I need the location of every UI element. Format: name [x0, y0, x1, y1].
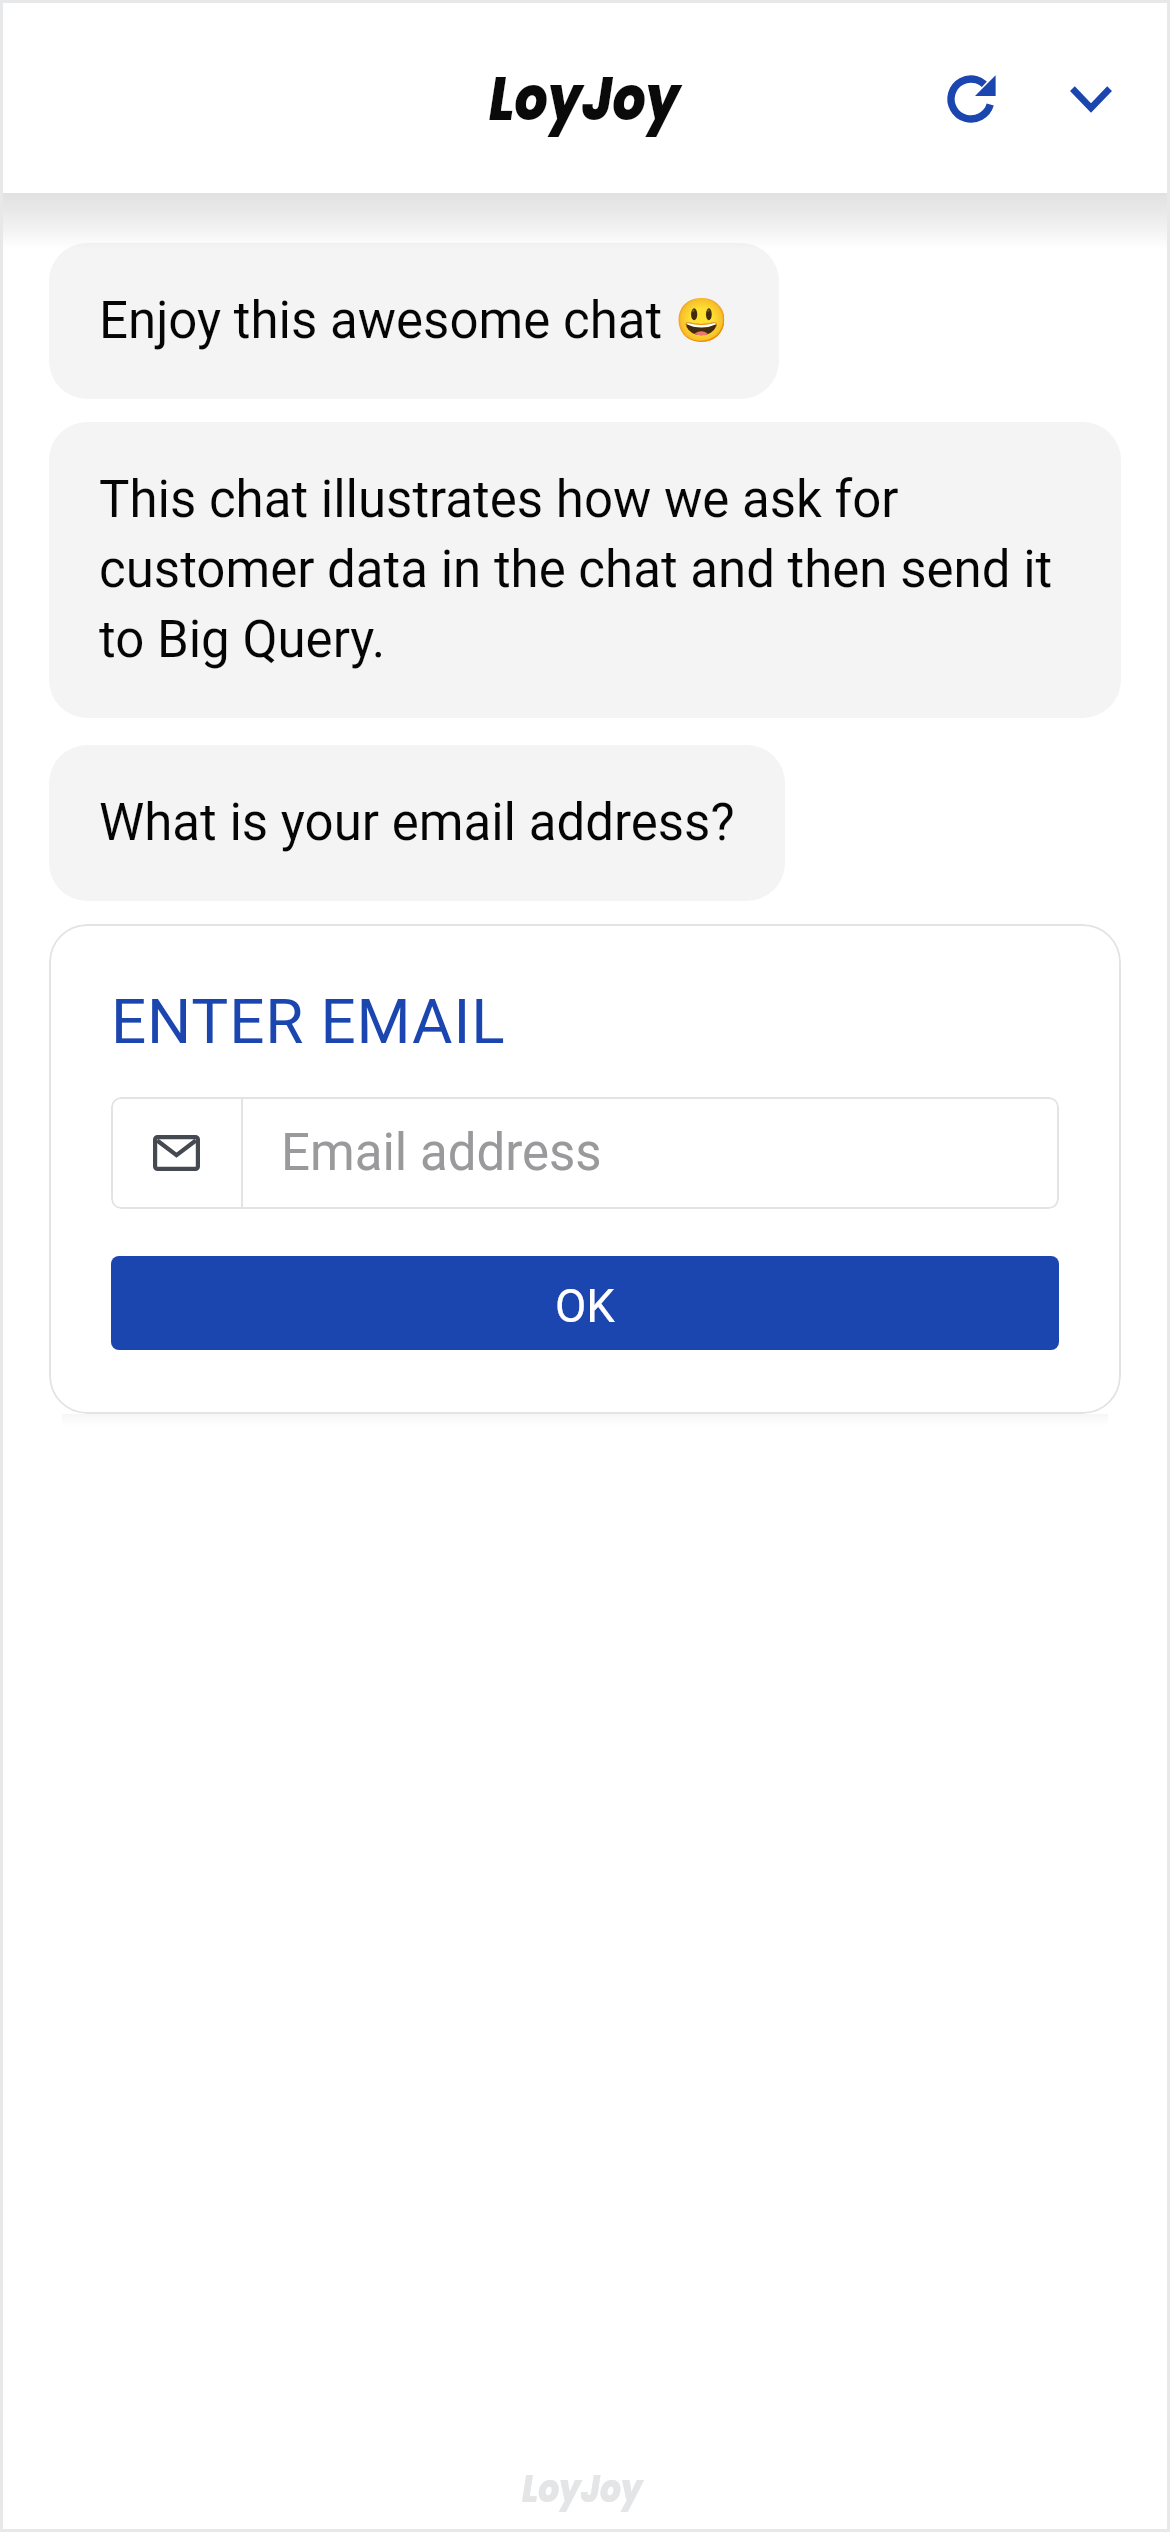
staticText: This chat illustrates how we ask for cus…: [99, 470, 1071, 670]
staticText: OK: [555, 1280, 615, 1333]
staticText: LoyJoy: [489, 56, 680, 141]
button[interactable]: Restart chat: [929, 51, 1025, 147]
button[interactable]: This chat illustrates how we ask for cus…: [49, 422, 1121, 718]
button[interactable]: Email address: [111, 1097, 1059, 1209]
staticText: What is your email address?: [99, 793, 735, 853]
button[interactable]: Minimise chat: [1043, 51, 1139, 147]
staticText: LoyJoy: [522, 2462, 643, 2516]
staticText: Enjoy this awesome chat 😃: [99, 291, 729, 351]
staticText: ENTER EMAIL: [111, 985, 506, 1058]
button[interactable]: OK: [111, 1256, 1059, 1350]
staticText: Email address: [281, 1123, 602, 1183]
button[interactable]: Enjoy this awesome chat 😃: [49, 243, 779, 399]
button[interactable]: What is your email address?: [49, 745, 785, 901]
